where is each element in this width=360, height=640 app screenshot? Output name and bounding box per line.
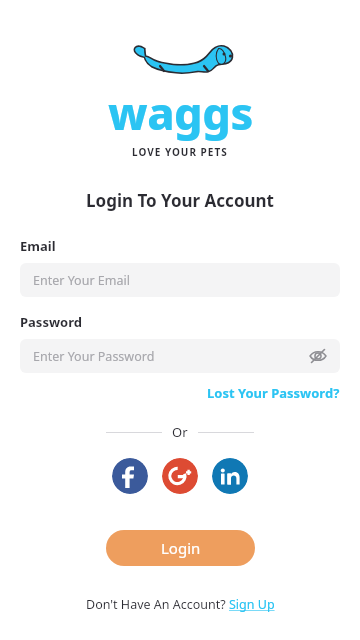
staticText: Or <box>172 423 188 441</box>
button[interactable]: Show password <box>304 342 332 370</box>
staticText: Login To Your Account <box>86 189 274 212</box>
button[interactable]: Lost Your Password? <box>207 381 340 405</box>
staticText: LOVE YOUR PETS <box>132 145 228 159</box>
staticText: waggs <box>108 82 253 143</box>
button[interactable]: Sign in with LinkedIn <box>212 458 248 494</box>
button[interactable]: Sign Up <box>229 596 275 613</box>
staticText: Enter Your Password <box>33 348 155 365</box>
button[interactable]: Sign in with Facebook <box>112 458 148 494</box>
staticText: Lost Your Password? <box>207 384 340 402</box>
staticText: Login <box>161 538 201 558</box>
staticText: Password <box>20 313 82 331</box>
staticText: Don't Have An Account? <box>86 596 229 613</box>
staticText: Sign Up <box>229 596 275 613</box>
staticText: Enter Your Email <box>33 272 130 289</box>
button[interactable]: Login <box>106 530 255 566</box>
button[interactable]: Enter Your Email <box>20 263 340 297</box>
staticText: Email <box>20 237 56 255</box>
button[interactable]: Enter Your Password <box>20 339 340 373</box>
button[interactable]: Sign in with Google <box>162 458 198 494</box>
